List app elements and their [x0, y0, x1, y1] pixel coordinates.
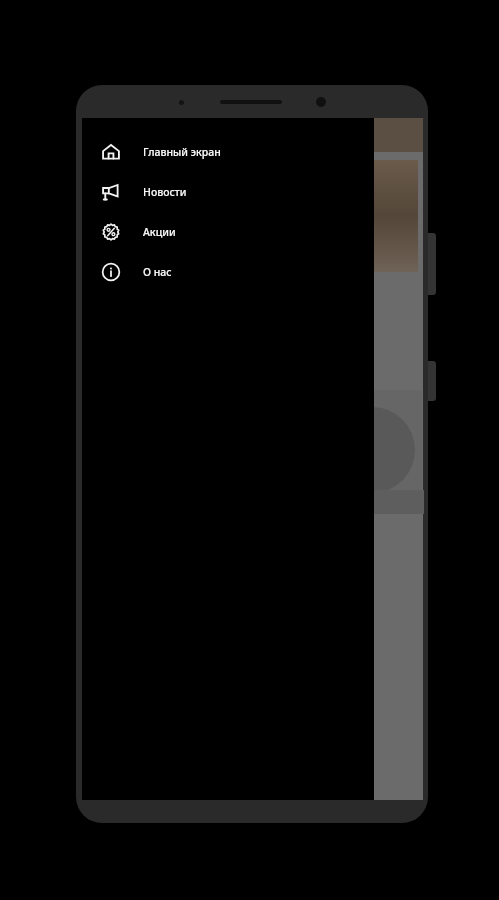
button[interactable]: Акции — [82, 212, 374, 252]
button[interactable]: Новости — [82, 172, 374, 212]
button[interactable]: О нас — [82, 252, 374, 292]
staticText: О нас — [143, 265, 172, 279]
staticText: Акции — [143, 225, 176, 239]
staticText: Новости — [143, 185, 187, 199]
staticText: Главный экран — [143, 145, 221, 159]
button[interactable]: Главный экран — [82, 132, 374, 172]
